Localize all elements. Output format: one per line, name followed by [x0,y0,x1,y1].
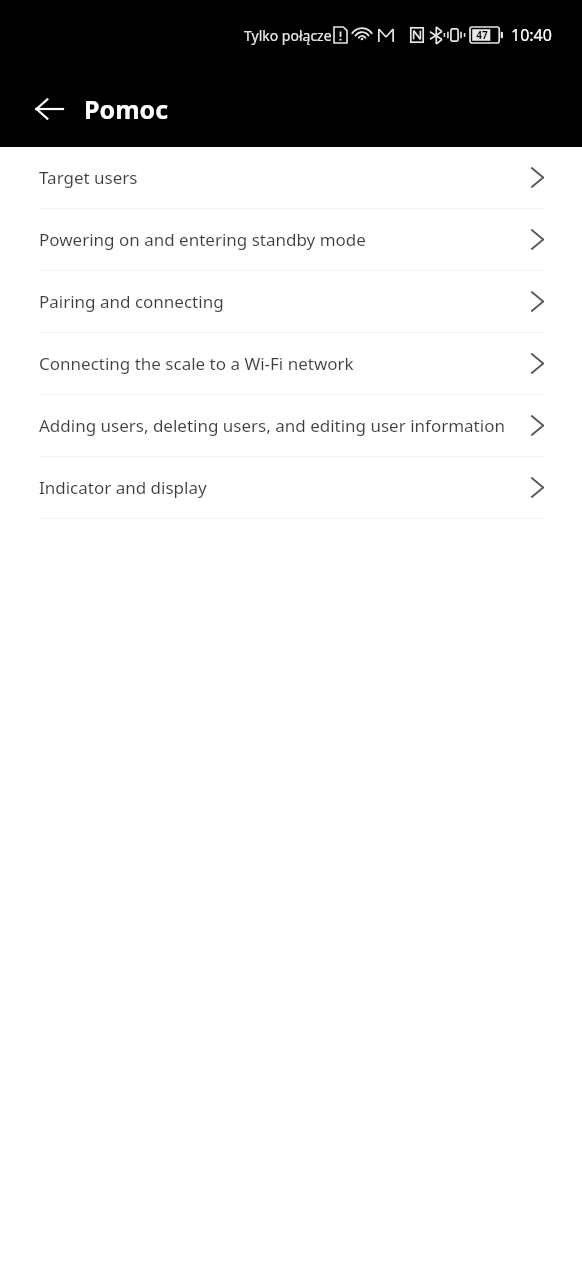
staticText: Connecting the scale to a Wi-Fi network [39,352,526,375]
button[interactable]: Connecting the scale to a Wi-Fi network [0,333,582,395]
staticText: Adding users, deleting users, and editin… [39,414,526,437]
button[interactable]: Pairing and connecting [0,271,582,333]
staticText: Pairing and connecting [39,290,526,313]
staticText: Pomoc [84,92,169,126]
staticText: Target users [39,166,526,189]
button[interactable]: Adding users, deleting users, and editin… [0,395,582,457]
button[interactable]: Powering on and entering standby mode [0,209,582,271]
button[interactable]: Target users [0,147,582,209]
staticText: Tylko połącze [244,26,332,45]
button[interactable]: Indicator and display [0,457,582,519]
staticText: Powering on and entering standby mode [39,228,526,251]
staticText: Indicator and display [39,476,526,499]
button[interactable]: Back [20,80,78,138]
staticText: 47 [473,28,491,42]
staticText: 10:40 [511,24,552,46]
